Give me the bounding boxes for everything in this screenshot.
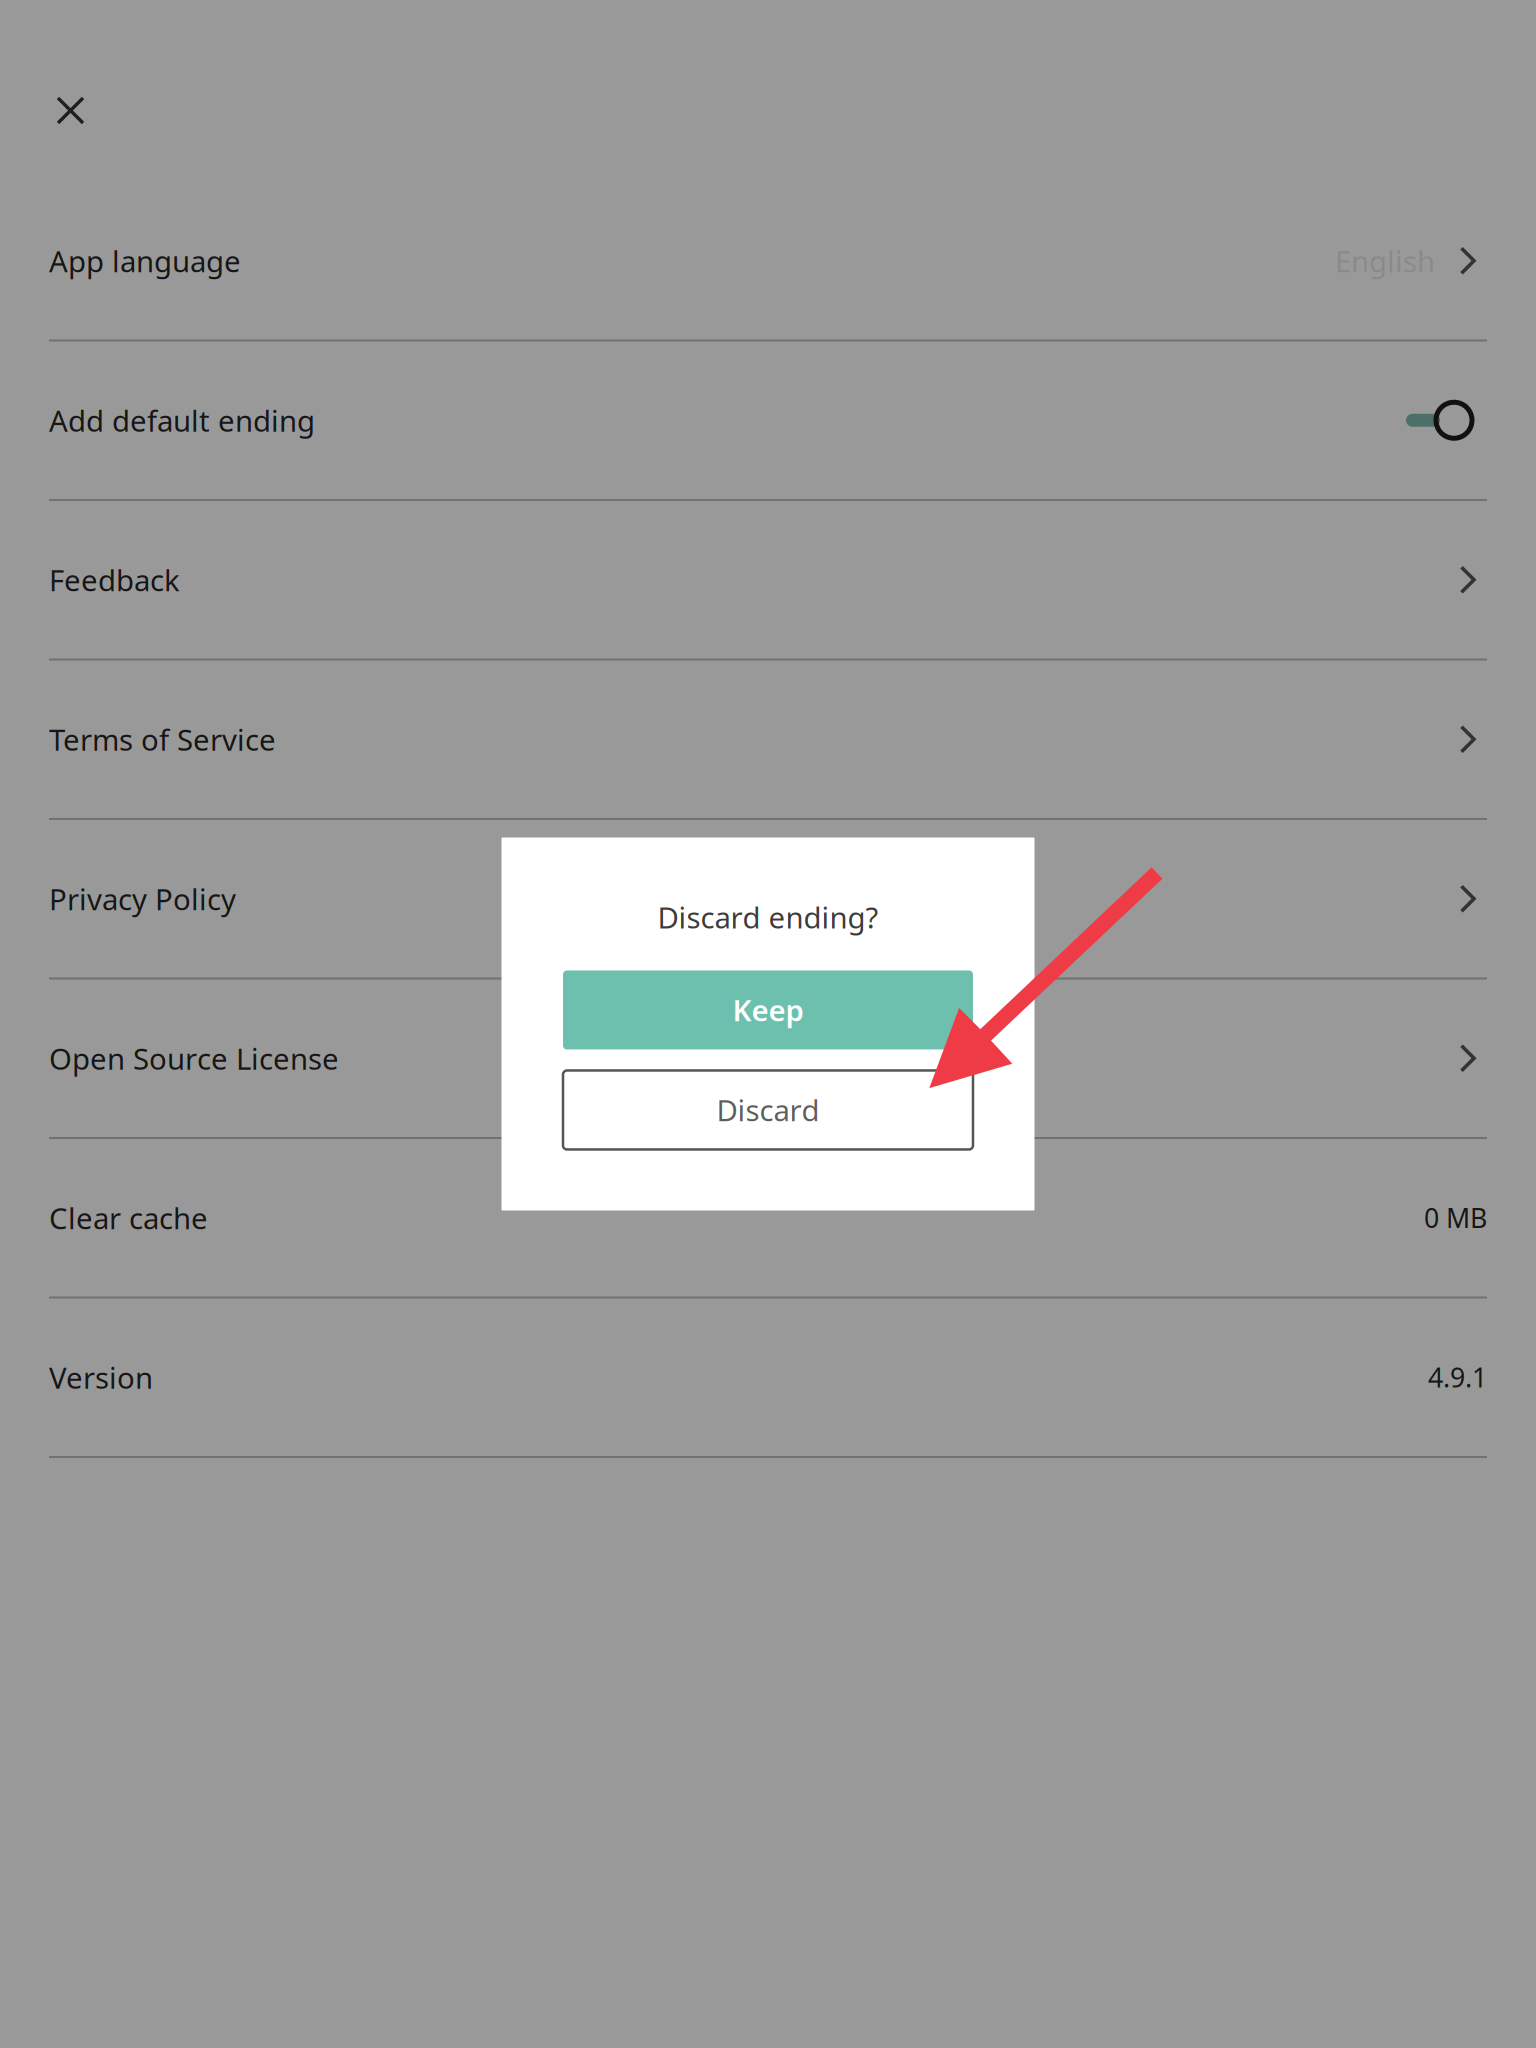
button[interactable]: Close <box>0 70 111 151</box>
staticText: English <box>1335 241 1435 280</box>
staticText: Clear cache <box>49 1198 208 1237</box>
button[interactable]: Add default ending <box>0 341 1536 501</box>
staticText: Version <box>49 1358 153 1397</box>
staticText: 4.9.1 <box>1428 1359 1487 1395</box>
button[interactable]: Feedback <box>0 501 1536 660</box>
staticText: Keep <box>732 990 803 1029</box>
staticText: Privacy Policy <box>49 879 236 918</box>
staticText: Discard <box>716 1090 819 1129</box>
staticText: 0 MB <box>1424 1200 1487 1235</box>
staticText: App language <box>49 241 241 280</box>
button[interactable]: Discard <box>563 1070 973 1149</box>
button[interactable]: Terms of Service <box>0 660 1536 820</box>
staticText: Feedback <box>49 560 180 599</box>
button[interactable]: App language <box>0 182 1536 341</box>
button[interactable]: Clear cache <box>0 1139 1536 1298</box>
staticText: Terms of Service <box>49 720 276 759</box>
staticText: Add default ending <box>49 401 315 440</box>
staticText: Discard ending? <box>657 897 878 936</box>
button[interactable]: Keep <box>563 970 973 1049</box>
staticText: Open Source License <box>49 1039 339 1078</box>
button[interactable]: Open Source License <box>0 979 1536 1139</box>
button[interactable]: Privacy Policy <box>0 820 1536 979</box>
